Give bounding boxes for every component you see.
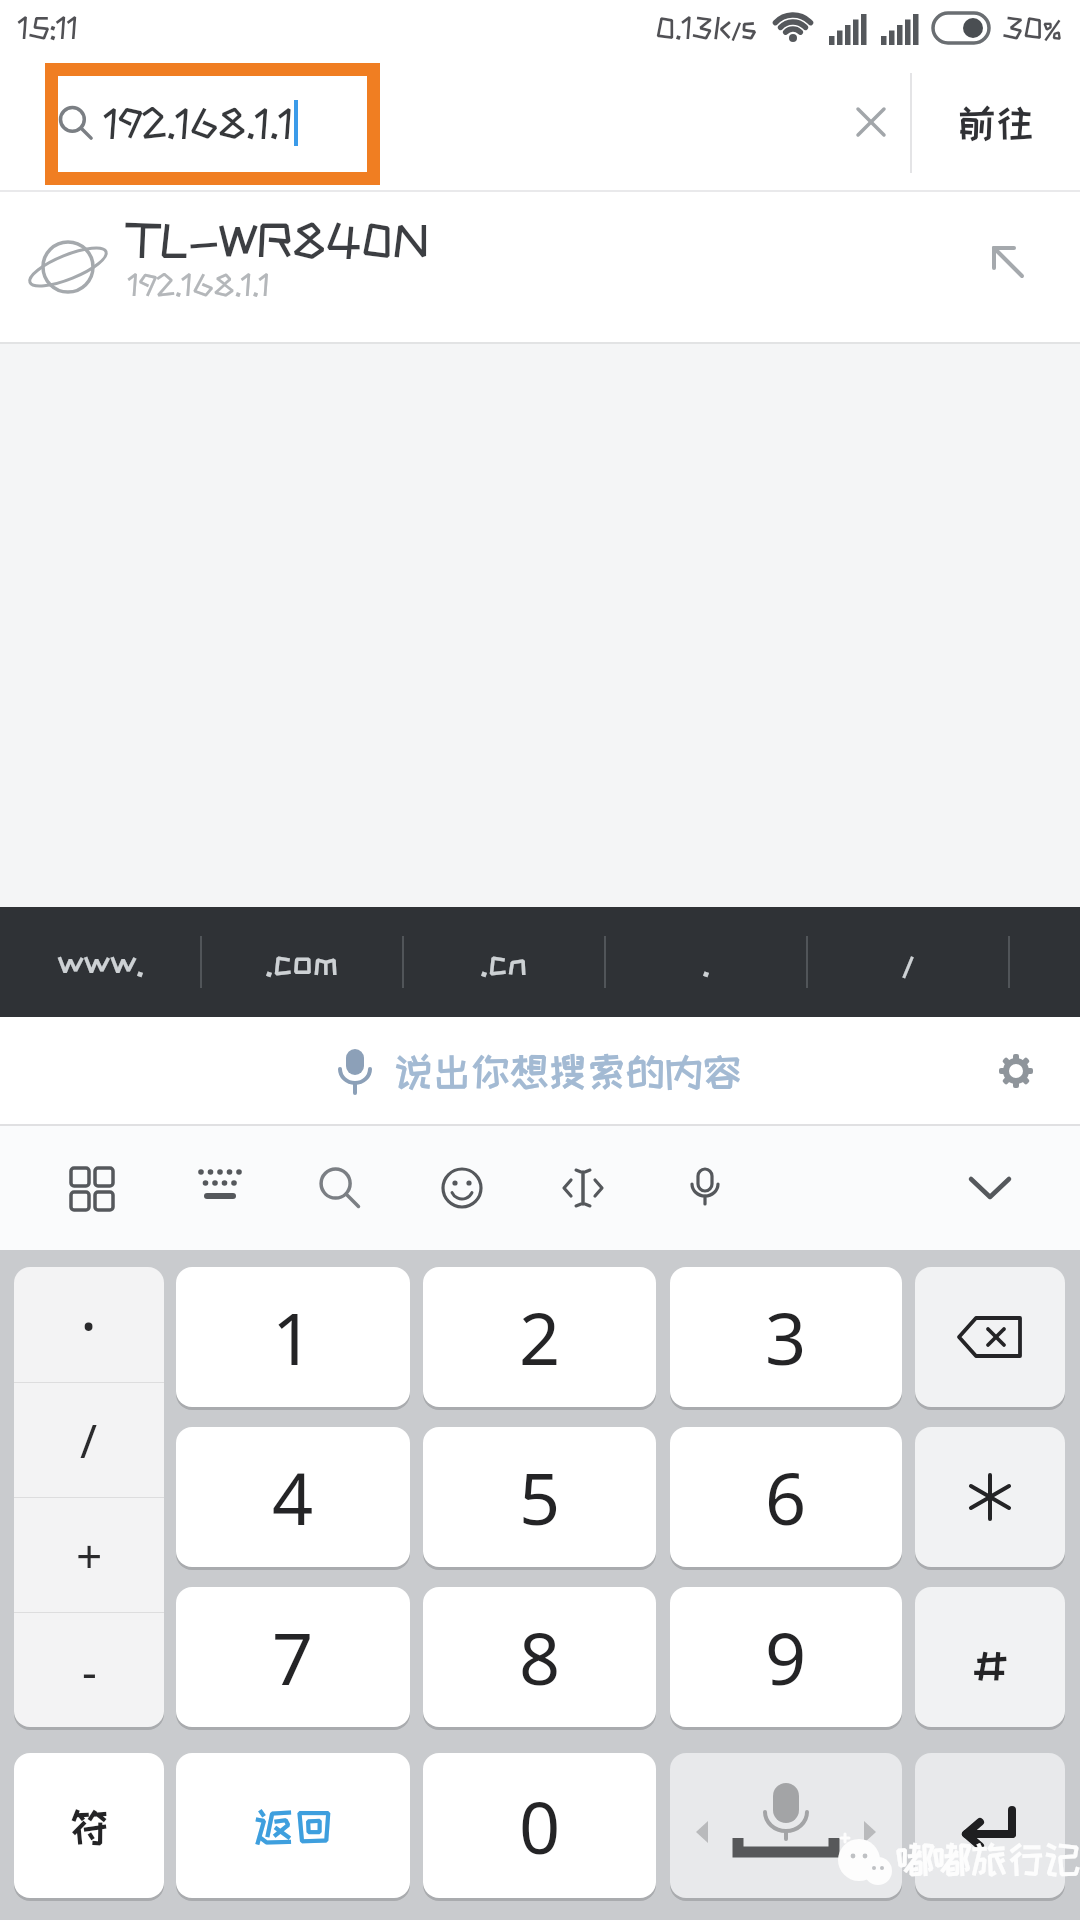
staticText: 192.168.1.1 <box>104 103 294 143</box>
button[interactable] <box>998 1053 1034 1089</box>
staticText: 0.13K/s <box>655 13 757 43</box>
staticText: .com <box>265 944 339 980</box>
button[interactable]: 2 <box>423 1267 656 1407</box>
staticText: · <box>80 1281 98 1368</box>
button[interactable]: 4 <box>176 1427 410 1567</box>
staticText: 符 <box>69 1804 110 1848</box>
button[interactable]: # <box>915 1587 1065 1727</box>
button[interactable]: - <box>14 1613 164 1727</box>
button[interactable]: 符 <box>14 1753 164 1898</box>
button[interactable]: 6 <box>670 1427 902 1567</box>
button[interactable]: 3 <box>670 1267 902 1407</box>
staticText: www. <box>57 944 144 980</box>
staticText: 6 <box>765 1448 807 1546</box>
button[interactable] <box>670 1753 902 1898</box>
staticText: 8 <box>519 1608 561 1706</box>
button[interactable]: 7 <box>176 1587 410 1727</box>
button[interactable]: 0 <box>423 1753 656 1898</box>
staticText: .cn <box>480 944 528 980</box>
button[interactable] <box>915 1267 1065 1407</box>
button[interactable] <box>440 1166 484 1210</box>
button[interactable]: www. <box>0 907 200 1017</box>
staticText: 1 <box>272 1288 314 1386</box>
button[interactable] <box>968 1166 1012 1210</box>
button[interactable]: 9 <box>670 1587 902 1727</box>
button[interactable] <box>69 1166 113 1210</box>
button[interactable] <box>683 1166 727 1210</box>
button[interactable]: . <box>606 907 806 1017</box>
staticText: 嘟嘟旅行记 <box>897 1839 1080 1879</box>
button[interactable] <box>561 1166 605 1210</box>
staticText: 前往 <box>958 102 1034 143</box>
button[interactable]: · <box>14 1267 164 1382</box>
button[interactable]: 前往 <box>912 55 1080 190</box>
button[interactable] <box>915 1427 1065 1567</box>
button[interactable]: 返回 <box>176 1753 410 1898</box>
staticText: 5 <box>519 1448 561 1546</box>
button[interactable]: 说出你想搜索的内容 <box>338 1047 742 1095</box>
staticText: 30% <box>1003 13 1062 43</box>
staticText: 4 <box>272 1448 314 1546</box>
staticText: + <box>76 1524 103 1587</box>
staticText: 0 <box>519 1777 561 1875</box>
staticText: / <box>902 944 914 980</box>
staticText: / <box>80 1409 98 1472</box>
button[interactable] <box>915 1753 1065 1898</box>
staticText: 7 <box>272 1608 314 1706</box>
button[interactable]: 1 <box>176 1267 410 1407</box>
button[interactable]: .cn <box>404 907 604 1017</box>
staticText: 9 <box>765 1608 807 1706</box>
staticText: 15:11 <box>18 13 79 43</box>
staticText: - <box>82 1639 97 1702</box>
button[interactable]: TL-WR840N <box>0 192 1080 342</box>
staticText: 2 <box>519 1288 561 1386</box>
button[interactable]: / <box>14 1383 164 1497</box>
button[interactable] <box>852 103 890 141</box>
staticText: 3 <box>765 1288 807 1386</box>
button[interactable] <box>197 1166 241 1210</box>
staticText: . <box>702 944 711 980</box>
staticText: TL-WR840N <box>128 216 430 264</box>
button[interactable]: .com <box>202 907 402 1017</box>
staticText: 返回 <box>253 1804 334 1848</box>
staticText: # <box>973 1630 1008 1684</box>
staticText: 192.168.1.1 <box>128 270 270 300</box>
button[interactable]: / <box>808 907 1008 1017</box>
button[interactable] <box>318 1166 362 1210</box>
button[interactable]: 8 <box>423 1587 656 1727</box>
button[interactable]: + <box>14 1498 164 1612</box>
staticText: 说出你想搜索的内容 <box>394 1050 742 1092</box>
button[interactable]: 5 <box>423 1427 656 1567</box>
